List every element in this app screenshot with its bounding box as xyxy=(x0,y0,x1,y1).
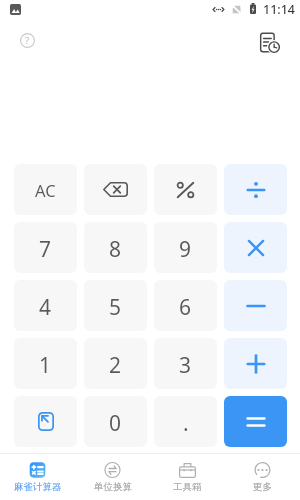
button[interactable] xyxy=(224,338,287,389)
button[interactable]: AC xyxy=(14,164,77,215)
button[interactable]: 更多 xyxy=(225,454,300,500)
staticText: 4 xyxy=(39,293,52,322)
button[interactable]: 2 xyxy=(84,338,147,389)
staticText: 2 xyxy=(109,351,122,380)
staticText: 6 xyxy=(179,293,192,322)
staticText: . xyxy=(183,409,189,438)
staticText: 7 xyxy=(39,235,52,264)
button[interactable] xyxy=(224,222,287,273)
button[interactable]: 工具箱 xyxy=(150,454,225,500)
button[interactable]: 8 xyxy=(84,222,147,273)
staticText: 8 xyxy=(109,235,122,264)
staticText: 更多 xyxy=(253,481,272,493)
button[interactable]: 5 xyxy=(84,280,147,331)
button[interactable] xyxy=(224,396,287,447)
staticText: ? xyxy=(25,34,30,47)
button[interactable]: 4 xyxy=(14,280,77,331)
staticText: 麻雀计算器 xyxy=(14,481,62,493)
button[interactable]: 3 xyxy=(154,338,217,389)
button[interactable]: 1 xyxy=(14,338,77,389)
button[interactable]: Percent xyxy=(154,164,217,215)
button[interactable]: 9 xyxy=(154,222,217,273)
staticText: 工具箱 xyxy=(173,481,202,493)
staticText: AC xyxy=(35,179,56,201)
staticText: 9 xyxy=(179,235,192,264)
staticText: 单位换算 xyxy=(94,481,132,493)
staticText: 1 xyxy=(39,351,52,380)
button[interactable] xyxy=(224,280,287,331)
button[interactable]: 6 xyxy=(154,280,217,331)
staticText: 11:14 xyxy=(263,1,296,18)
button[interactable]: 麻雀计算器 xyxy=(0,454,75,500)
button[interactable]: Help xyxy=(17,30,38,51)
staticText: 3 xyxy=(179,351,192,380)
button[interactable]: Backspace xyxy=(84,164,147,215)
button[interactable]: 0 xyxy=(84,396,147,447)
button[interactable]: Insert result xyxy=(14,396,77,447)
button[interactable]: 7 xyxy=(14,222,77,273)
button[interactable]: History xyxy=(257,30,282,55)
button[interactable]: 单位换算 xyxy=(75,454,150,500)
button[interactable]: . xyxy=(154,396,217,447)
staticText: 0 xyxy=(109,409,122,438)
staticText: 5 xyxy=(109,293,122,322)
button[interactable] xyxy=(224,164,287,215)
